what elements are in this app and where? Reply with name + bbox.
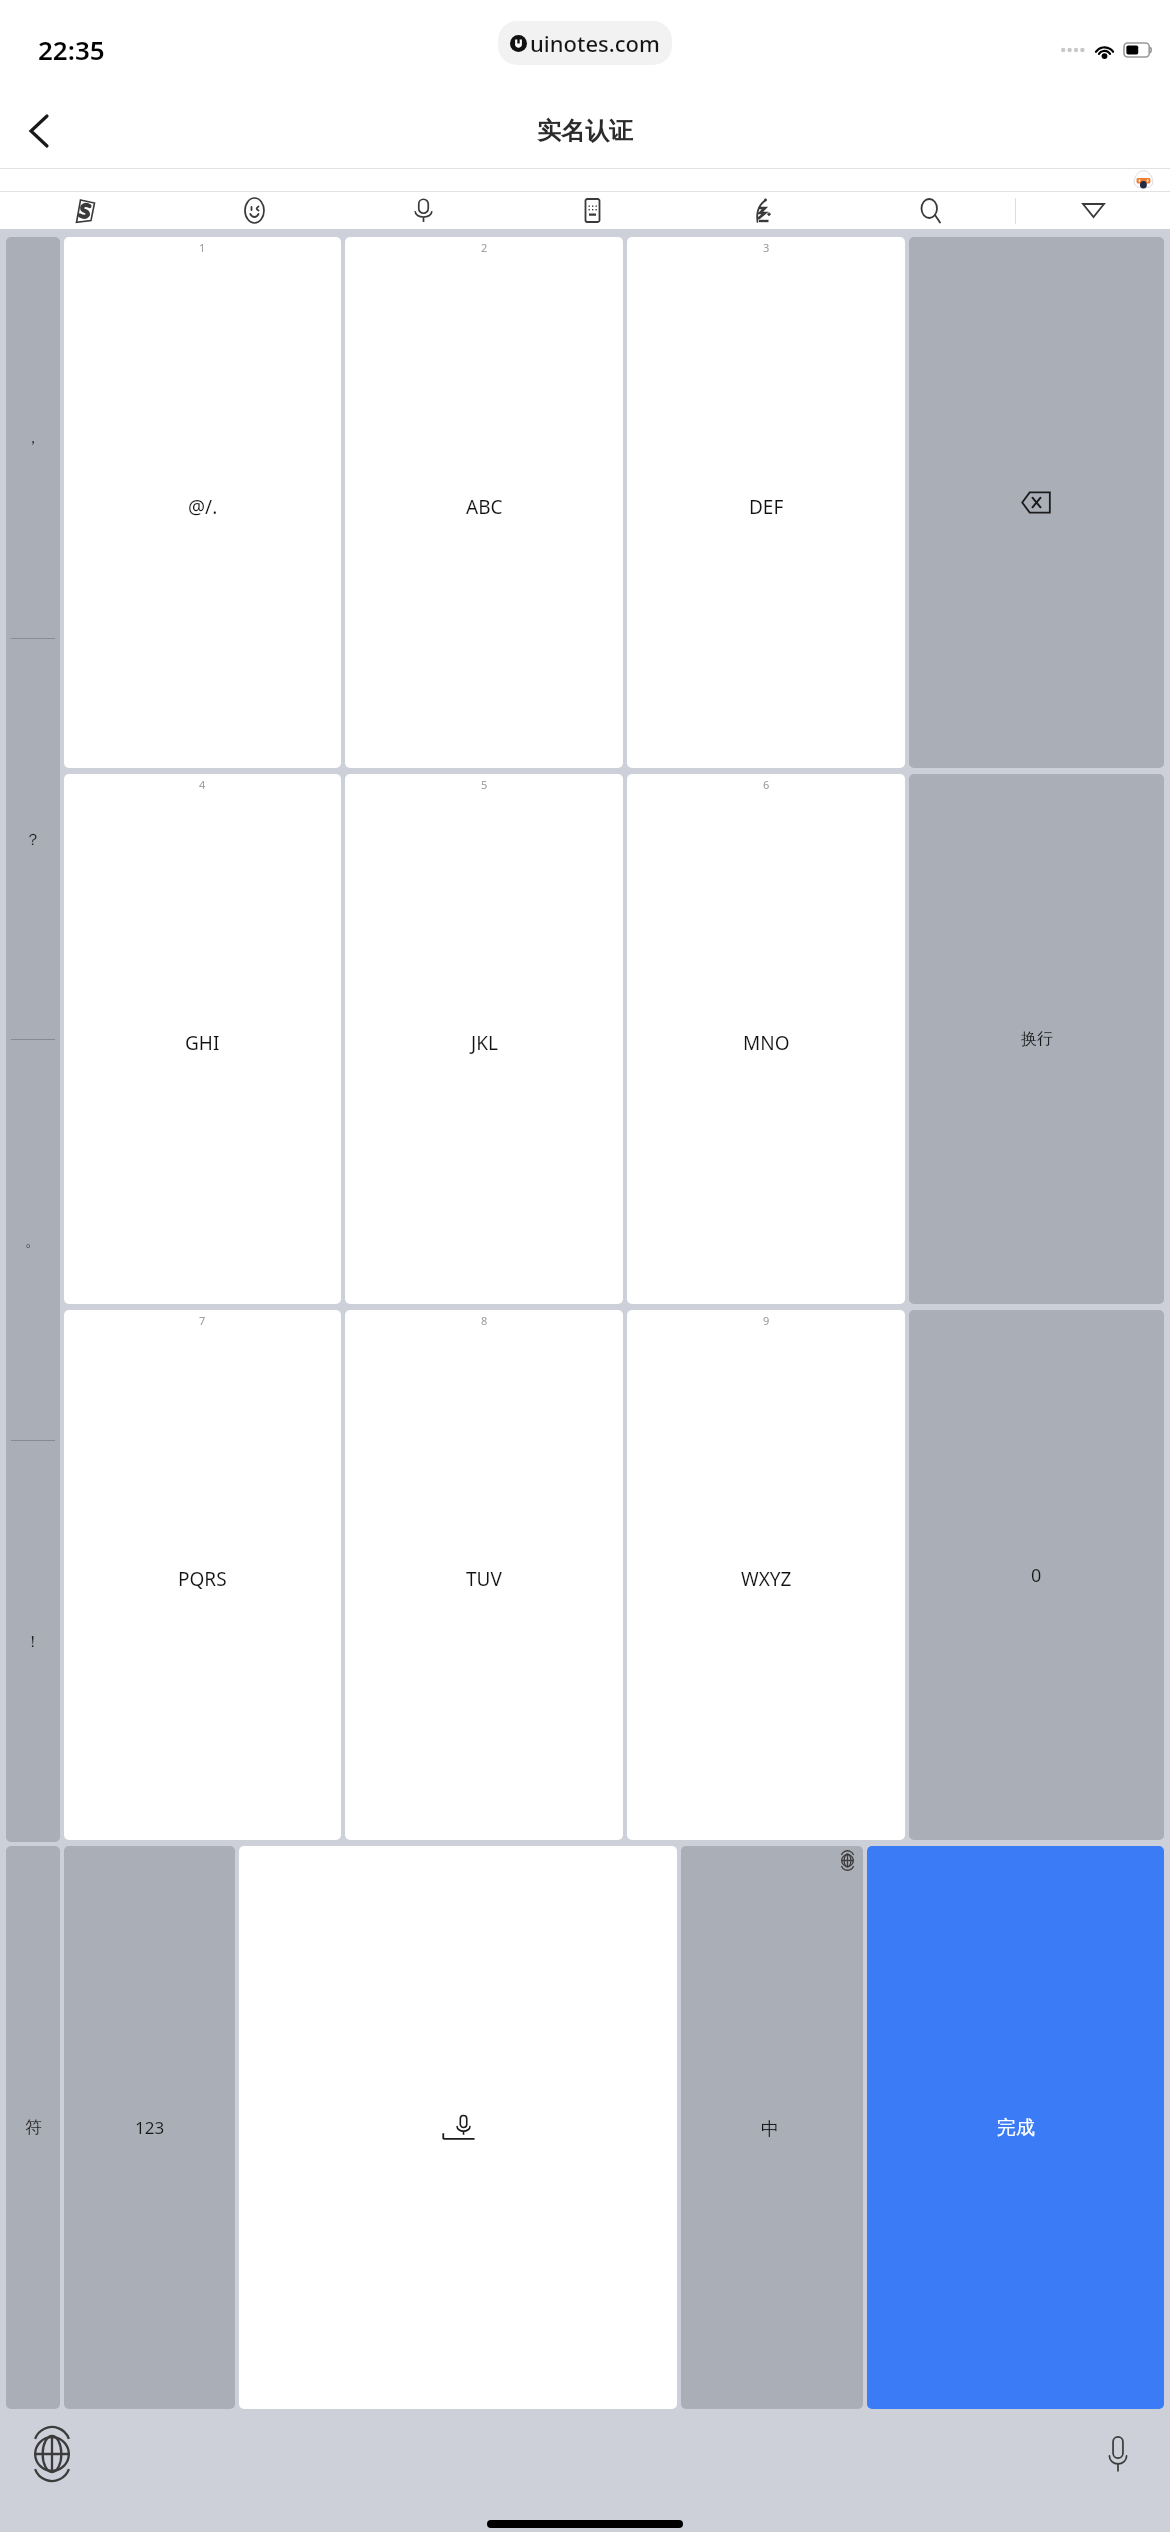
staticText: 0 (1031, 1563, 1042, 1588)
button[interactable]: Voice input (339, 192, 508, 229)
staticText: 9 (763, 1313, 770, 1328)
staticText: 。 (25, 1231, 41, 1251)
staticText: 换行 (1021, 1029, 1053, 1049)
staticText: 2 (481, 240, 488, 255)
button[interactable]: 7 (64, 1310, 341, 1840)
button[interactable]: 符 (6, 1846, 60, 2409)
staticText: 1 (199, 240, 206, 255)
staticText: 22:35 (38, 32, 105, 67)
staticText: MNO (743, 1030, 790, 1056)
button[interactable]: Handwriting (677, 192, 846, 229)
staticText: 4 (199, 777, 206, 792)
button[interactable]: Search (846, 192, 1015, 229)
button[interactable]: Switch language (681, 1846, 863, 2409)
staticText: 实名认证 (537, 116, 633, 146)
staticText: ABC (466, 494, 503, 520)
staticText: DEF (749, 494, 784, 520)
button[interactable]: Change keyboard (30, 2432, 74, 2476)
button[interactable]: 换行 (909, 774, 1164, 1304)
staticText: 6 (763, 777, 770, 792)
button[interactable]: Back (10, 102, 68, 160)
staticText: @/. (188, 494, 218, 520)
staticText: ！ (25, 1632, 41, 1652)
staticText: GHI (185, 1030, 220, 1056)
button[interactable]: Space, voice input (239, 1846, 677, 2409)
button[interactable]: 4 (64, 774, 341, 1304)
button[interactable]: Dictation (1096, 2432, 1140, 2476)
staticText: WXYZ (741, 1566, 792, 1592)
staticText: 中 (761, 2118, 779, 2141)
button[interactable]: 123 (64, 1846, 235, 2409)
staticText: 符 (25, 2117, 42, 2138)
button[interactable]: 完成 (867, 1846, 1164, 2409)
button[interactable]: 9 (627, 1310, 905, 1840)
staticText: 8 (481, 1313, 488, 1328)
button[interactable]: Delete (909, 237, 1164, 768)
button[interactable]: Emoji (170, 192, 339, 229)
staticText: 7 (199, 1313, 206, 1328)
staticText: 完成 (997, 2116, 1035, 2140)
button[interactable]: Keyboard layout (508, 192, 677, 229)
staticText: TUV (466, 1566, 502, 1592)
button[interactable]: 2 (345, 237, 623, 768)
staticText: ， (25, 428, 41, 448)
button[interactable]: 1 (64, 237, 341, 768)
staticText: 3 (763, 240, 770, 255)
button[interactable]: Sogou (0, 192, 170, 229)
staticText: 5 (481, 777, 488, 792)
button[interactable]: 8 (345, 1310, 623, 1840)
button[interactable]: 6 (627, 774, 905, 1304)
staticText: uinotes.com (530, 28, 660, 58)
button[interactable]: 3 (627, 237, 905, 768)
staticText: ？ (25, 830, 41, 850)
staticText: 123 (135, 2116, 165, 2139)
staticText: JKL (471, 1030, 498, 1056)
staticText: PQRS (178, 1566, 227, 1592)
button[interactable]: 5 (345, 774, 623, 1304)
button[interactable]: Hide keyboard (1016, 192, 1170, 229)
